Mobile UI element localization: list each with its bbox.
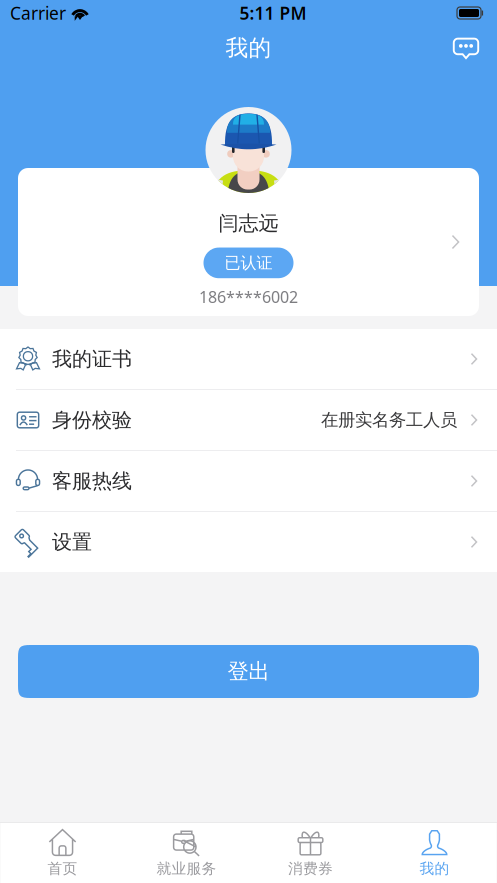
staticText: 已认证 bbox=[224, 253, 272, 273]
button[interactable]: 就业服务 bbox=[124, 823, 248, 883]
staticText: 登出 bbox=[227, 658, 269, 685]
button[interactable]: 闫志远 bbox=[18, 168, 479, 316]
button[interactable]: Messages bbox=[453, 35, 479, 61]
staticText: 我的 bbox=[419, 859, 449, 877]
staticText: 我的 bbox=[225, 34, 271, 62]
staticText: 设置 bbox=[52, 530, 92, 554]
staticText: 消费券 bbox=[288, 859, 333, 877]
staticText: 闫志远 bbox=[218, 211, 278, 236]
staticText: 5:11 PM bbox=[239, 1, 306, 24]
staticText: 就业服务 bbox=[156, 859, 216, 877]
button[interactable]: 我的证书 bbox=[0, 329, 497, 390]
staticText: 身份校验 bbox=[52, 408, 132, 432]
button[interactable]: 首页 bbox=[0, 823, 124, 883]
button[interactable]: 客服热线 bbox=[0, 451, 497, 512]
staticText: 首页 bbox=[47, 859, 77, 877]
button[interactable]: 登出 bbox=[18, 645, 479, 698]
staticText: 客服热线 bbox=[52, 469, 132, 493]
button[interactable]: 设置 bbox=[0, 512, 497, 572]
button[interactable]: 消费券 bbox=[248, 823, 372, 883]
button[interactable]: 身份校验 bbox=[0, 390, 497, 451]
staticText: 186****6002 bbox=[199, 286, 298, 307]
button[interactable]: 我的 bbox=[372, 823, 496, 883]
staticText: Carrier bbox=[10, 1, 66, 24]
staticText: 在册实名务工人员 bbox=[321, 409, 457, 431]
staticText: 我的证书 bbox=[52, 347, 132, 371]
